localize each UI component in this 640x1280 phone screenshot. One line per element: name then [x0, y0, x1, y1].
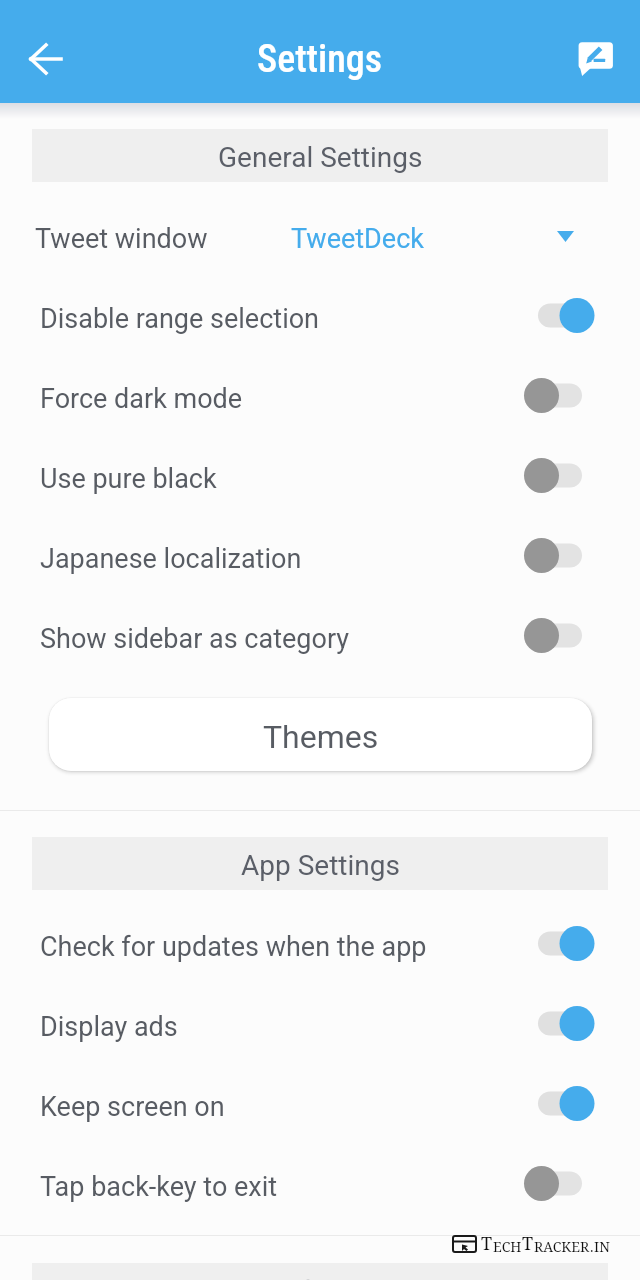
staticText: IN [594, 1237, 610, 1256]
staticText: T [481, 1231, 493, 1256]
staticText: T [522, 1231, 534, 1256]
button[interactable]: On [526, 920, 606, 968]
button[interactable]: Check for updates when the app [0, 904, 640, 984]
staticText: Force dark mode [40, 383, 526, 415]
button[interactable]: Off [526, 1160, 606, 1208]
button[interactable]: Japanese localization [0, 516, 640, 596]
staticText: TweetDeck [291, 223, 424, 255]
button[interactable]: Off [526, 372, 606, 420]
button[interactable]: Themes [49, 698, 592, 771]
button[interactable]: Off [526, 532, 606, 580]
button[interactable]: Off [526, 612, 606, 660]
staticText: Display ads [40, 1011, 526, 1043]
staticText: . [590, 1237, 594, 1256]
button[interactable]: Display ads [0, 984, 640, 1064]
staticText: Check for updates when the app [40, 931, 526, 963]
button[interactable]: Use pure black [0, 436, 640, 516]
staticText: Japanese localization [40, 543, 526, 575]
button[interactable]: On [526, 1080, 606, 1128]
button[interactable]: Tweet window [0, 196, 640, 276]
button[interactable]: On [526, 292, 606, 340]
staticText: Tap back-key to exit [40, 1171, 526, 1203]
staticText: Disable range selection [40, 303, 526, 335]
staticText: RACKER [534, 1237, 590, 1256]
button[interactable]: Off [526, 452, 606, 500]
button[interactable]: Back [8, 17, 78, 87]
button[interactable]: Tap back-key to exit [0, 1144, 640, 1224]
staticText: General Settings [218, 141, 423, 174]
staticText: Tweet window [35, 223, 208, 255]
button[interactable]: Show sidebar as category [0, 596, 640, 676]
button[interactable]: Force dark mode [0, 356, 640, 436]
staticText: Use pure black [40, 463, 526, 495]
staticText: Show sidebar as category [40, 623, 526, 655]
staticText: Settings [257, 37, 383, 82]
staticText: App Settings [241, 849, 400, 882]
staticText: ECH [493, 1237, 522, 1256]
staticText: Keep screen on [40, 1091, 526, 1123]
button[interactable]: Disable range selection [0, 276, 640, 356]
button[interactable]: Compose tweet [566, 22, 624, 80]
staticText: Themes [263, 718, 379, 756]
button[interactable]: On [526, 1000, 606, 1048]
button[interactable]: Keep screen on [0, 1064, 640, 1144]
